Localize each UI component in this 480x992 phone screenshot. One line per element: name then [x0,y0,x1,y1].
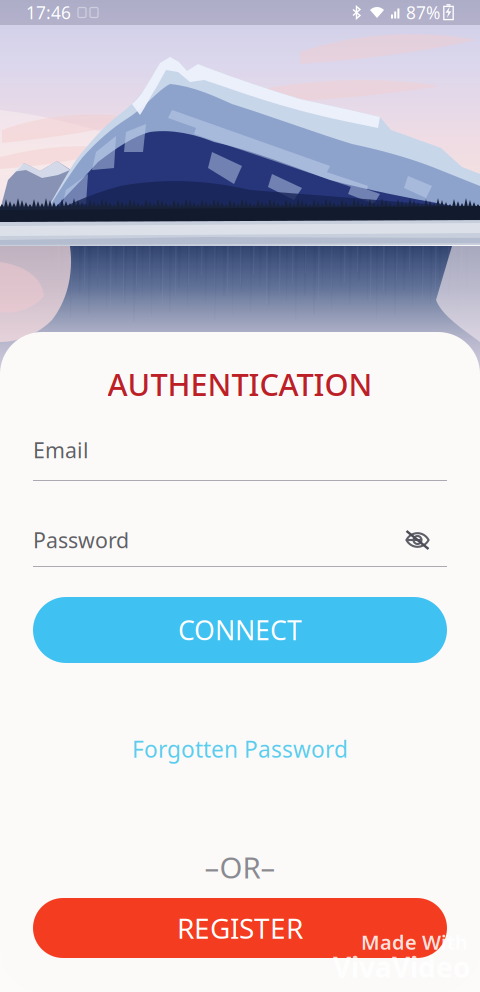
staticText: VivaVideo [333,948,471,986]
staticText: 17:46 [26,1,71,24]
button[interactable]: Show password [395,525,447,555]
staticText: CONNECT [178,612,302,648]
staticText: AUTHENTICATION [107,364,372,404]
staticText: Email [33,436,89,464]
staticText: REGISTER [177,909,303,947]
staticText: –OR– [204,847,275,886]
staticText: 87% [406,1,440,24]
staticText: Forgotten Password [132,734,348,764]
button[interactable]: Forgotten Password [132,735,348,763]
staticText: Made With [361,929,468,955]
staticText: Password [33,526,129,554]
button[interactable]: REGISTER [33,898,447,958]
button[interactable]: CONNECT [33,597,447,663]
